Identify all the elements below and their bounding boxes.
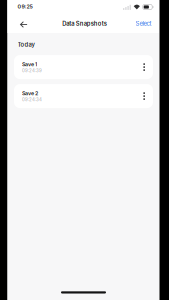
staticText: Save 2: [22, 90, 38, 96]
staticText: Select: [135, 20, 151, 27]
staticText: Snapshots: [76, 20, 107, 27]
staticText: 09:24:34: [22, 97, 42, 102]
button[interactable]: More options: [143, 63, 153, 71]
button[interactable]: Save 2: [14, 84, 153, 108]
button[interactable]: More options: [143, 92, 153, 100]
staticText: Data: [62, 20, 74, 27]
staticText: 09:25: [17, 3, 32, 10]
button[interactable]: Select: [135, 20, 159, 27]
staticText: Save 1: [22, 61, 37, 67]
staticText: Today: [17, 41, 34, 48]
button[interactable]: Save 1: [14, 55, 153, 79]
staticText: 09:24:39: [22, 68, 42, 73]
button[interactable]: Back: [7, 16, 27, 31]
